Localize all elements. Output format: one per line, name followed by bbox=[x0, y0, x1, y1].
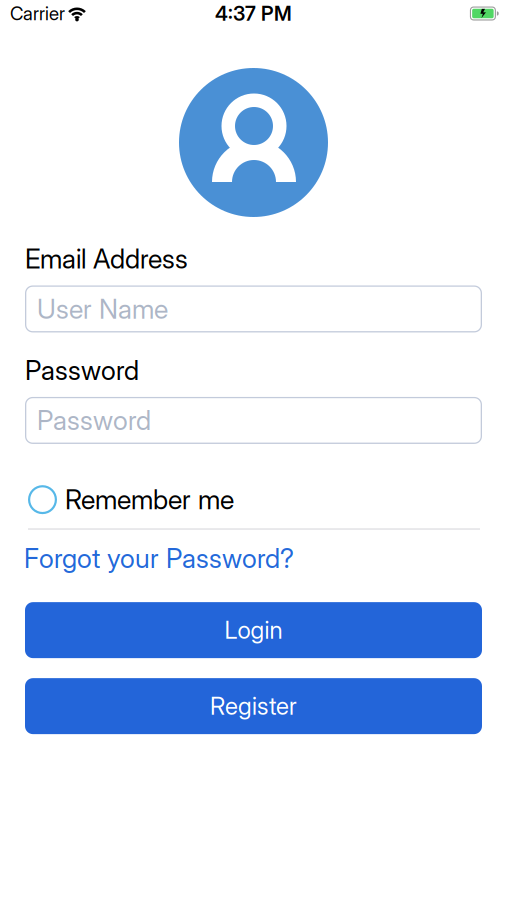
staticText: Login bbox=[224, 616, 282, 644]
staticText: 4:37 PM bbox=[215, 2, 292, 25]
staticText: Password bbox=[25, 354, 139, 386]
button[interactable]: User Name bbox=[25, 285, 482, 332]
button[interactable]: Password bbox=[25, 397, 482, 444]
staticText: User Name bbox=[37, 293, 168, 325]
staticText: Password bbox=[37, 405, 151, 436]
staticText: Forgot your Password? bbox=[24, 543, 294, 574]
staticText: Carrier bbox=[10, 2, 65, 24]
staticText: Register bbox=[210, 692, 297, 720]
staticText: Remember me bbox=[65, 484, 234, 515]
button[interactable]: Register bbox=[25, 678, 482, 734]
button[interactable]: Login bbox=[25, 602, 482, 658]
button[interactable]: Remember me bbox=[28, 484, 234, 515]
button[interactable]: Forgot your Password? bbox=[24, 543, 294, 574]
staticText: Email Address bbox=[25, 243, 188, 274]
